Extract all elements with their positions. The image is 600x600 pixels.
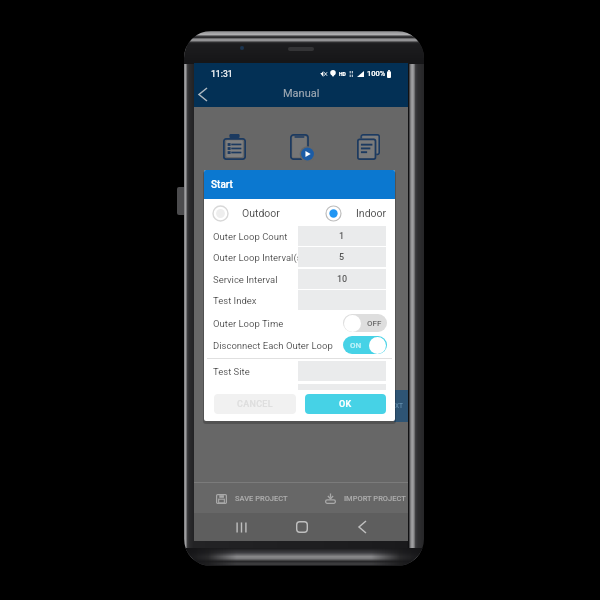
- staticText: IMPORT PROJECT: [344, 494, 406, 503]
- button[interactable]: SAVE PROJECT: [216, 484, 292, 513]
- staticText: Indoor: [356, 207, 387, 219]
- button[interactable]: Back: [344, 513, 380, 541]
- staticText: Start: [211, 179, 233, 191]
- button[interactable]: Back: [192, 83, 214, 105]
- staticText: OK: [339, 399, 352, 410]
- button[interactable]: 10: [298, 269, 386, 289]
- staticText: Test Index: [213, 295, 257, 306]
- button[interactable]: Outdoor: [212, 201, 280, 225]
- staticText: 1: [339, 231, 345, 242]
- staticText: Outdoor: [242, 207, 280, 219]
- staticText: OFF: [367, 319, 382, 328]
- staticText: XT: [395, 402, 404, 410]
- staticText: Outer Loop Interval(s: [213, 252, 302, 263]
- staticText: Manual: [283, 87, 320, 100]
- button[interactable]: 5: [298, 247, 386, 267]
- staticText: SAVE PROJECT: [235, 494, 288, 503]
- button[interactable]: CANCEL: [214, 394, 296, 414]
- staticText: 10: [337, 274, 348, 285]
- button[interactable]: Checklist: [200, 130, 268, 164]
- staticText: Outer Loop Time: [213, 318, 284, 329]
- staticText: 100%: [367, 69, 386, 78]
- button[interactable]: 1: [298, 226, 386, 246]
- staticText: 5: [339, 252, 345, 263]
- button[interactable]: Recents: [223, 513, 259, 541]
- staticText: 11:31: [211, 69, 233, 79]
- staticText: Service Interval: [213, 274, 278, 285]
- staticText: HD: [339, 71, 346, 77]
- button[interactable]: Reports: [335, 130, 402, 164]
- staticText: Disconnect Each Outer Loop: [213, 340, 333, 351]
- button[interactable]: Run test: [268, 130, 335, 164]
- staticText: CANCEL: [237, 399, 273, 410]
- button[interactable]: Indoor: [325, 201, 387, 225]
- staticText: Test Site: [213, 366, 250, 377]
- button[interactable]: IMPORT PROJECT: [325, 484, 407, 513]
- staticText: ON: [350, 341, 362, 350]
- staticText: Outer Loop Count: [213, 231, 288, 242]
- button[interactable]: Toggle on: [343, 336, 387, 354]
- button[interactable]: OK: [305, 394, 386, 414]
- button[interactable]: Home: [284, 513, 320, 541]
- button[interactable]: Toggle off: [343, 314, 387, 332]
